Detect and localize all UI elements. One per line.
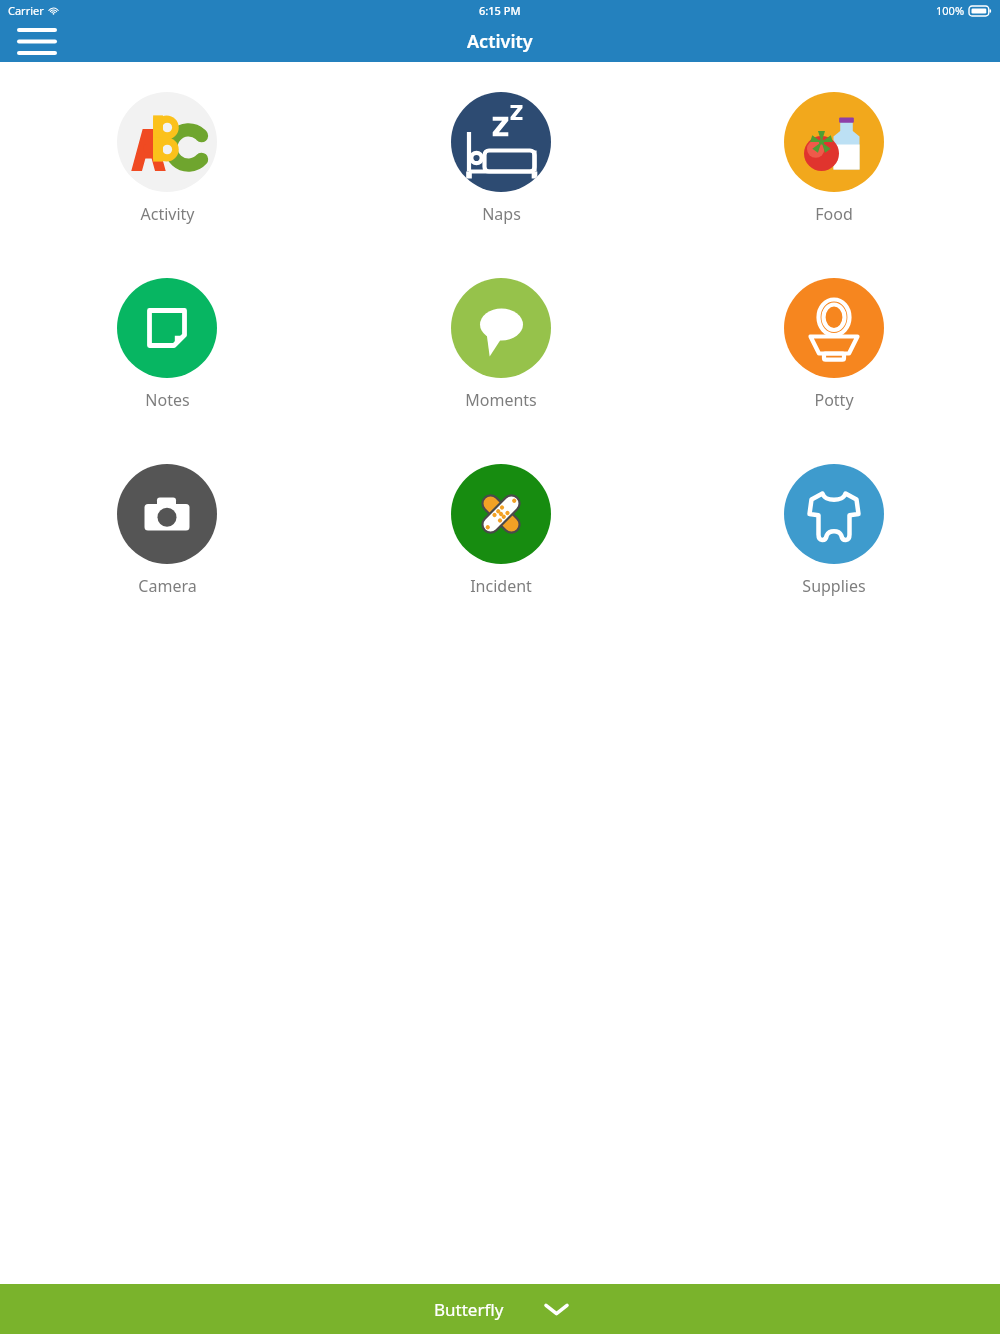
button[interactable]: Supplies [778, 458, 890, 603]
button[interactable]: Butterfly [0, 1284, 1000, 1334]
staticText: Notes [145, 389, 190, 411]
button[interactable]: Incident [445, 458, 557, 603]
staticText: Activity [140, 203, 195, 225]
staticText: Carrier [8, 3, 44, 18]
staticText: Incident [470, 575, 532, 597]
button[interactable]: Food [778, 86, 890, 231]
staticText: Moments [465, 389, 537, 411]
staticText: Activity [467, 29, 533, 54]
button[interactable]: Open navigation menu [10, 20, 64, 62]
staticText: 100% [936, 3, 965, 18]
button[interactable]: Camera [111, 458, 223, 603]
staticText: Potty [814, 389, 854, 411]
staticText: Supplies [802, 575, 866, 597]
button[interactable]: Activity [111, 86, 223, 231]
button[interactable]: Naps [445, 86, 557, 231]
button[interactable]: Moments [445, 272, 557, 417]
staticText: Camera [138, 575, 197, 597]
staticText: Butterfly [434, 1298, 504, 1321]
staticText: 6:15 PM [479, 3, 521, 18]
button[interactable]: Potty [778, 272, 890, 417]
staticText: Food [815, 203, 853, 225]
button[interactable]: Notes [111, 272, 223, 417]
staticText: Naps [482, 203, 521, 225]
